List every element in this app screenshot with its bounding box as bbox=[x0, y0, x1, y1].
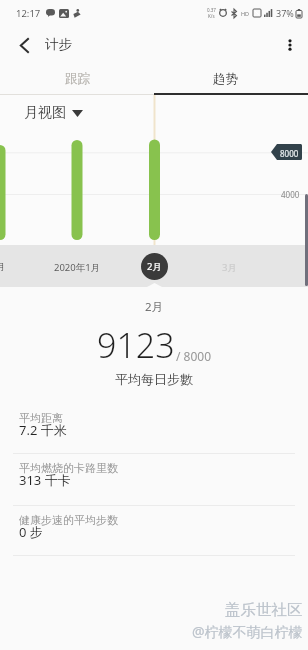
button[interactable]: 趋势 bbox=[154, 64, 308, 93]
button[interactable]: More options bbox=[272, 27, 308, 63]
staticText: HD bbox=[241, 10, 250, 17]
button[interactable]: 跟踪 bbox=[0, 64, 154, 93]
staticText: 趋势 bbox=[213, 71, 238, 87]
staticText: 12:17 bbox=[16, 7, 41, 20]
staticText: 8000 bbox=[280, 148, 299, 159]
staticText: 平均燃烧的卡路里数 bbox=[19, 461, 118, 475]
staticText: 月 bbox=[0, 261, 6, 273]
button[interactable]: 健康步速的平均步数 bbox=[0, 506, 308, 556]
button[interactable]: 平均燃烧的卡路里数 bbox=[0, 454, 308, 506]
staticText: 7.2 千米 bbox=[19, 421, 67, 439]
staticText: 盖乐世社区 bbox=[225, 600, 303, 620]
staticText: 2月 bbox=[145, 299, 164, 315]
staticText: 月视图 bbox=[24, 104, 66, 122]
staticText: 9123 bbox=[97, 322, 175, 368]
staticText: 3月 bbox=[222, 261, 237, 274]
button[interactable]: 平均距离 bbox=[0, 404, 308, 454]
button[interactable]: 2月 bbox=[141, 253, 168, 280]
staticText: 4000 bbox=[281, 189, 300, 200]
staticText: 0.37 bbox=[207, 7, 216, 13]
staticText: K/s bbox=[208, 13, 215, 19]
button[interactable]: 月视图 bbox=[24, 104, 83, 122]
staticText: / 8000 bbox=[176, 348, 212, 364]
staticText: 健康步速的平均步数 bbox=[19, 513, 118, 527]
staticText: 跟踪 bbox=[65, 71, 90, 87]
staticText: 0 步 bbox=[19, 523, 43, 541]
staticText: 37% bbox=[276, 7, 294, 19]
staticText: 平均距离 bbox=[19, 411, 63, 425]
staticText: 2020年1月 bbox=[54, 261, 101, 274]
button[interactable]: Back bbox=[6, 27, 42, 63]
staticText: 313 千卡 bbox=[19, 471, 71, 489]
staticText: @柠檬不萌白柠檬 bbox=[192, 622, 303, 641]
staticText: 2月 bbox=[147, 260, 162, 273]
staticText: 计步 bbox=[45, 36, 72, 53]
staticText: 平均每日步數 bbox=[115, 371, 193, 387]
